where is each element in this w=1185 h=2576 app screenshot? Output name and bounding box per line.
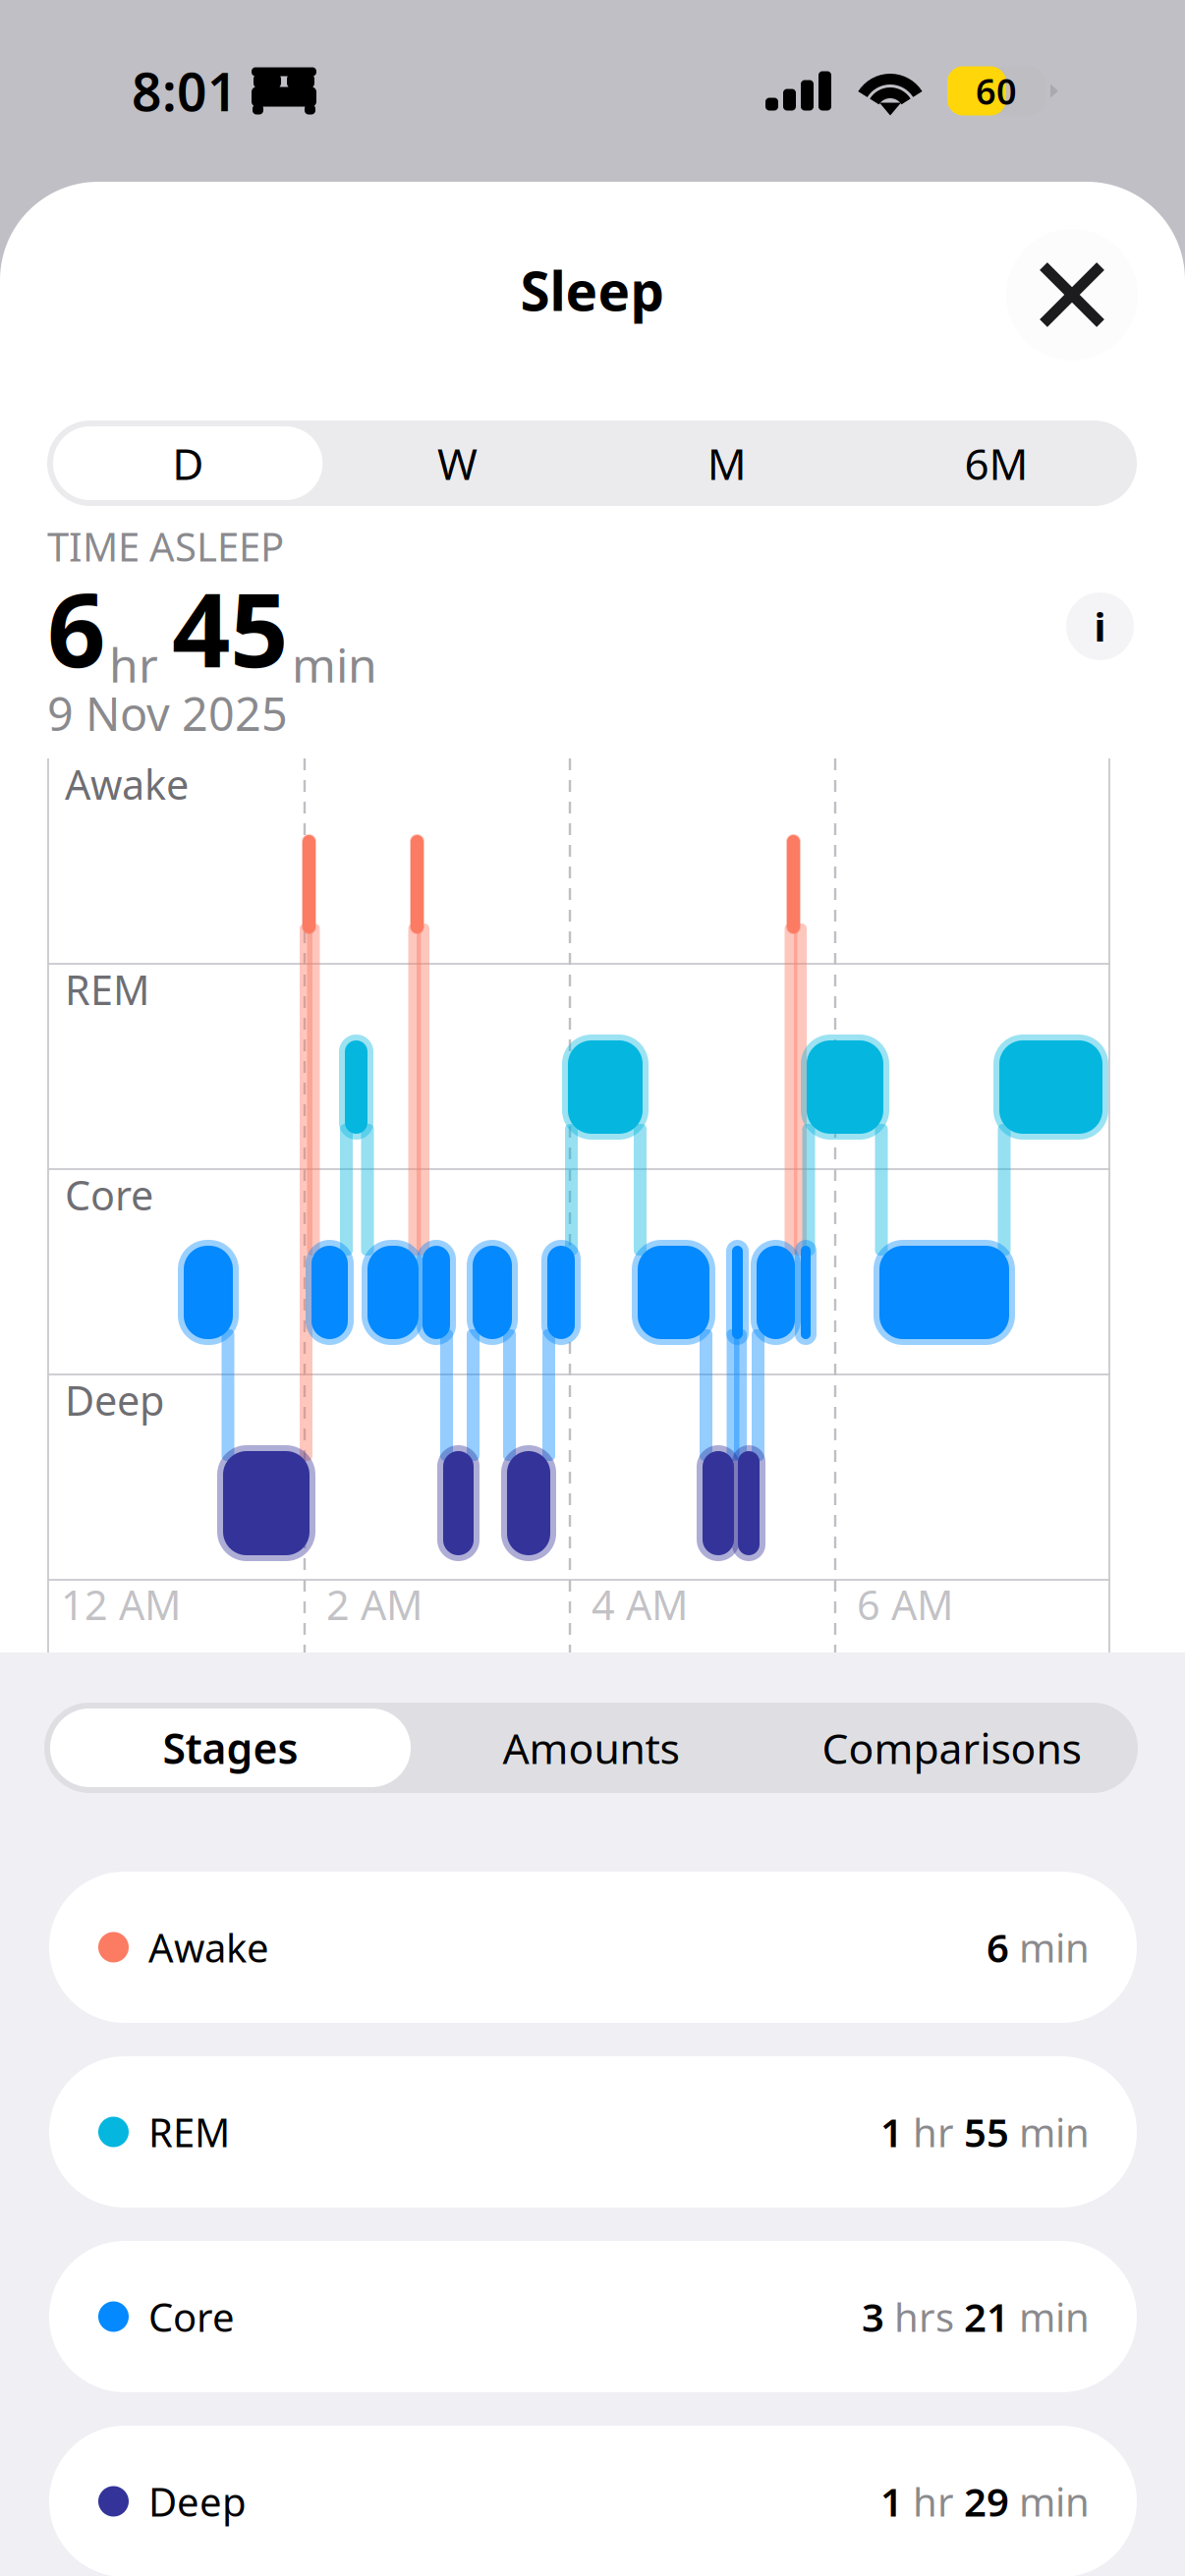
staticText: min [1019,2475,1090,2527]
staticText: 6 AM [857,1577,953,1631]
staticText: W [437,435,477,492]
button[interactable]: M [592,426,861,500]
staticText: 29 [964,2475,1009,2527]
staticText: 4 AM [592,1577,688,1631]
button[interactable]: W [322,426,592,500]
button[interactable]: 6M [862,426,1131,500]
staticText: 8:01 [132,56,238,126]
staticText: hr [913,2475,954,2527]
staticText: 6M [964,435,1028,492]
button[interactable]: REM [49,2056,1137,2208]
staticText: M [707,435,746,492]
staticText: 2 AM [326,1577,423,1631]
staticText: Amounts [503,1720,679,1776]
button[interactable]: Stages [50,1708,411,1787]
staticText: D [172,435,203,492]
staticText: Comparisons [822,1720,1081,1776]
staticText: min [292,633,377,696]
staticText: 9 Nov 2025 [47,683,288,744]
staticText: Stages [163,1720,298,1776]
staticText: 12 AM [61,1577,181,1631]
button[interactable]: D [53,426,322,500]
button[interactable]: Core [49,2241,1137,2392]
staticText: 1 [880,2475,903,2527]
staticText: i [1094,600,1106,652]
staticText: hr [913,2106,954,2158]
staticText: 60 [976,67,1017,114]
staticText: Core [65,1168,153,1222]
staticText: hrs [894,2290,954,2343]
staticText: 55 [964,2106,1009,2158]
staticText: min [1019,2106,1090,2158]
staticText: Deep [148,2475,247,2527]
staticText: 6 [987,1921,1009,1973]
staticText: Core [148,2290,235,2343]
staticText: REM [65,962,149,1016]
staticText: min [1019,1921,1090,1973]
staticText: Awake [148,1921,269,1973]
staticText: TIME ASLEEP [47,520,284,572]
staticText: 45 [172,560,288,696]
button[interactable]: Amounts [411,1708,771,1787]
staticText: Deep [65,1373,164,1427]
staticText: 1 [880,2106,903,2158]
staticText: hr [109,633,158,696]
staticText: 6 [47,560,105,696]
staticText: Sleep [520,254,665,326]
button[interactable]: Close [1006,229,1138,361]
button[interactable]: Deep [49,2426,1137,2576]
button[interactable]: Comparisons [771,1708,1132,1787]
staticText: 3 [862,2290,884,2343]
button[interactable]: Awake [49,1872,1137,2023]
staticText: 21 [964,2290,1009,2343]
button[interactable]: About sleep [1066,592,1134,660]
staticText: REM [148,2106,230,2158]
staticText: min [1019,2290,1090,2343]
staticText: Awake [65,757,189,811]
